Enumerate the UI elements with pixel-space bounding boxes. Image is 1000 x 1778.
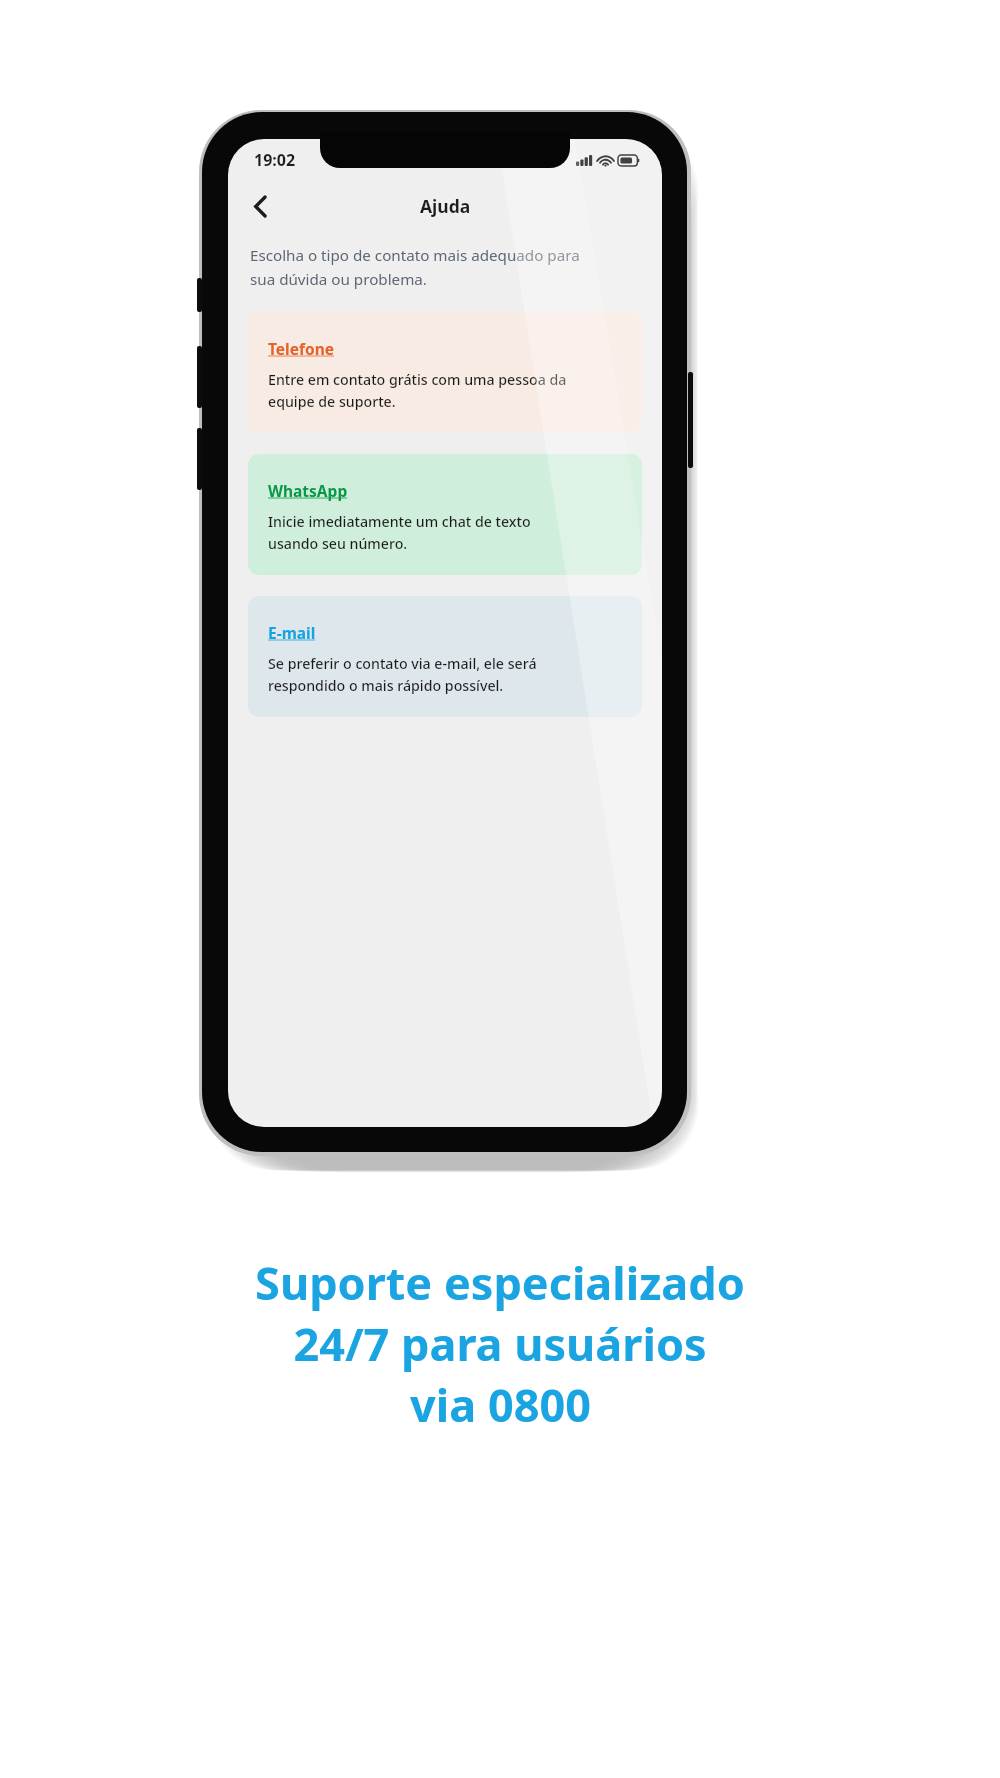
staticText: Suporte especializado (255, 1252, 745, 1313)
button[interactable]: Voltar (238, 184, 282, 228)
staticText: WhatsApp (268, 480, 348, 501)
staticText: Telefone (268, 338, 334, 359)
button[interactable]: WhatsApp (248, 454, 642, 575)
staticText: via 0800 (410, 1374, 591, 1435)
staticText: Escolha o tipo de contato mais adequado … (250, 245, 580, 289)
button[interactable]: Telefone (248, 312, 642, 433)
staticText: Inicie imediatamente um chat de texto us… (268, 512, 531, 553)
staticText: Ajuda (420, 194, 471, 218)
staticText: 19:02 (254, 149, 296, 171)
staticText: Entre em contato grátis com uma pessoa d… (268, 370, 567, 411)
staticText: Se preferir o contato via e-mail, ele se… (268, 654, 537, 695)
staticText: E-mail (268, 622, 316, 643)
button[interactable]: E-mail (248, 596, 642, 717)
staticText: 24/7 para usuários (293, 1313, 707, 1374)
